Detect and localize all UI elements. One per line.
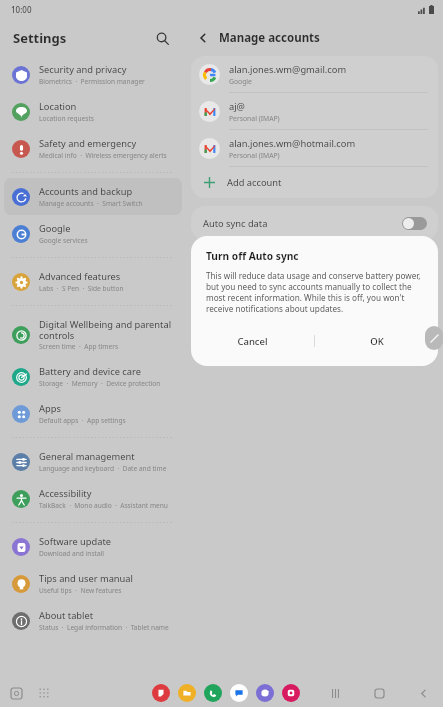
button[interactable]: Tips and user manual [4,565,182,602]
button[interactable]: Location [4,93,182,130]
button[interactable]: General management [4,443,182,480]
staticText: Google [229,77,252,86]
button[interactable]: OK [315,326,438,356]
staticText: Labs · S Pen · Side button [39,284,124,293]
staticText: Manage accounts [219,30,320,46]
button[interactable]: Navigate up [192,27,214,49]
button[interactable]: alan.jones.wm@gmail.com [191,56,438,92]
staticText: Useful tips · New features [39,586,122,595]
staticText: Download and install [39,549,105,558]
staticText: Battery and device care [39,365,141,378]
button[interactable]: Edit [425,326,443,350]
button[interactable]: Recent apps [6,683,26,703]
staticText: Security and privacy [39,63,127,76]
staticText: Medical info · Wireless emergency alerts [39,151,167,160]
staticText: Status · Legal information · Tablet name [39,623,169,632]
staticText: Add account [227,176,282,189]
button[interactable]: phone [204,684,222,702]
button[interactable]: samsung [256,684,274,702]
staticText: Settings [13,29,67,47]
button[interactable]: aj@ [191,93,438,129]
button[interactable]: About tablet [4,602,182,639]
staticText: Accessibility [39,487,92,500]
staticText: aj@ [229,100,245,113]
staticText: Location [39,100,77,113]
staticText: Manage accounts · Smart Switch [39,199,143,208]
staticText: Google services [39,236,88,245]
staticText: Location requests [39,114,95,123]
staticText: Digital Wellbeing and parental controls [39,318,176,341]
button[interactable]: Safety and emergency [4,130,182,167]
button[interactable]: Add account [191,167,438,198]
staticText: Screen time · App timers [39,342,119,351]
staticText: Accounts and backup [39,185,133,198]
button[interactable]: Accounts and backup [4,178,182,215]
staticText: OK [370,335,384,348]
button[interactable]: instagram [282,684,300,702]
button[interactable]: Home [369,683,389,703]
button[interactable]: Digital Wellbeing and parental controls [4,311,182,358]
button[interactable]: files [178,684,196,702]
staticText: Default apps · App settings [39,416,126,425]
staticText: alan.jones.wm@hotmail.com [229,137,356,150]
button[interactable]: messages [230,684,248,702]
staticText: Software update [39,535,112,548]
button[interactable]: Software update [4,528,182,565]
staticText: Personal (IMAP) [229,114,280,123]
button[interactable]: Auto sync data [191,206,438,240]
staticText: About tablet [39,609,94,622]
staticText: Turn off Auto sync [206,249,299,263]
button[interactable]: Back [413,683,433,703]
button[interactable]: All apps [34,683,54,703]
staticText: Tips and user manual [39,572,133,585]
button[interactable]: Battery and device care [4,358,182,395]
button[interactable]: keep [152,684,170,702]
staticText: Safety and emergency [39,137,137,150]
button[interactable]: Advanced features [4,263,182,300]
staticText: alan.jones.wm@gmail.com [229,63,347,76]
button[interactable]: Accessibility [4,480,182,517]
staticText: Cancel [237,335,268,348]
staticText: Apps [39,402,61,415]
staticText: TalkBack · Mono audio · Assistant menu [39,501,168,510]
staticText: Personal (IMAP) [229,151,280,160]
button[interactable]: Recents [325,683,345,703]
staticText: Storage · Memory · Device protection [39,379,161,388]
button[interactable]: Cancel [191,326,314,356]
button[interactable]: Security and privacy [4,56,182,93]
button[interactable]: Search settings [150,26,174,50]
button[interactable]: Apps [4,395,182,432]
staticText: Google [39,222,71,235]
button[interactable]: Google [4,215,182,252]
button[interactable]: alan.jones.wm@hotmail.com [191,130,438,166]
staticText: Biometrics · Permission manager [39,77,145,86]
button[interactable]: Auto sync data toggle, off [402,217,427,230]
staticText: General management [39,450,135,463]
staticText: This will reduce data usage and conserve… [206,270,423,314]
staticText: Language and keyboard · Date and time [39,464,167,473]
staticText: 10:00 [11,4,32,15]
staticText: Auto sync data [203,217,268,230]
staticText: Advanced features [39,270,121,283]
